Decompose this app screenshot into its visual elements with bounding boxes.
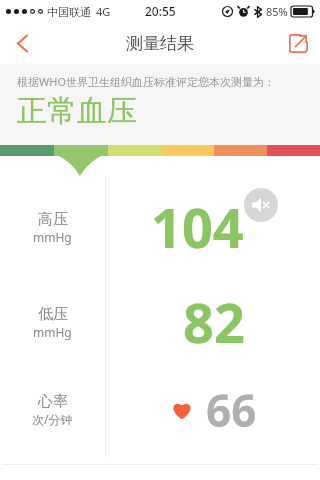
button[interactable]: Back: [0, 22, 44, 64]
staticText: 104: [151, 190, 244, 264]
button[interactable]: Mute: [244, 188, 278, 222]
staticText: 根据WHO世界卫生组织血压标准评定您本次测量为：: [17, 74, 275, 89]
staticText: 次/分钟: [32, 411, 73, 427]
button[interactable]: 低压: [0, 277, 320, 367]
staticText: 中国联通: [47, 5, 91, 19]
button[interactable]: 高压: [0, 177, 320, 277]
staticText: 正常血压: [17, 92, 137, 130]
staticText: 低压: [38, 305, 68, 324]
staticText: 测量结果: [126, 33, 194, 54]
staticText: 66: [206, 380, 257, 440]
staticText: 心率: [38, 392, 68, 411]
staticText: 20:55: [145, 3, 176, 19]
staticText: 4G: [96, 4, 111, 19]
button[interactable]: Share: [276, 22, 320, 64]
staticText: mmHg: [33, 324, 72, 340]
button[interactable]: 心率: [0, 367, 320, 452]
staticText: 82: [183, 285, 245, 359]
staticText: 高压: [38, 210, 68, 229]
staticText: 85%: [266, 4, 288, 19]
staticText: mmHg: [33, 229, 72, 245]
